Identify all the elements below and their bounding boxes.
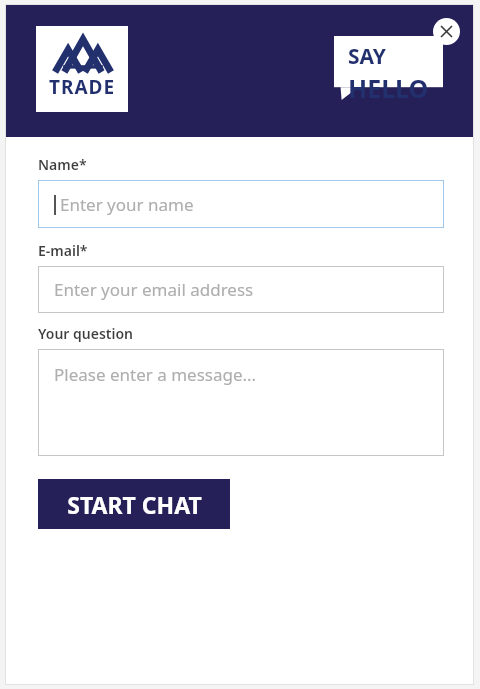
button[interactable]: START CHAT xyxy=(38,479,230,529)
staticText: Name* xyxy=(38,155,87,174)
button[interactable]: Enter your email address xyxy=(38,266,444,313)
button[interactable]: Please enter a message... xyxy=(38,349,444,456)
button[interactable]: Close xyxy=(433,18,460,45)
staticText: Please enter a message... xyxy=(54,363,257,386)
staticText: Enter your name xyxy=(60,193,194,216)
staticText: E-mail* xyxy=(38,241,88,260)
button[interactable]: Enter your name xyxy=(38,180,444,228)
staticText: HELLO xyxy=(348,71,429,100)
staticText: SAY xyxy=(348,42,386,71)
staticText: START CHAT xyxy=(67,489,202,520)
staticText: TRADE xyxy=(49,74,116,100)
staticText: Your question xyxy=(38,324,134,343)
staticText: Enter your email address xyxy=(54,278,254,301)
